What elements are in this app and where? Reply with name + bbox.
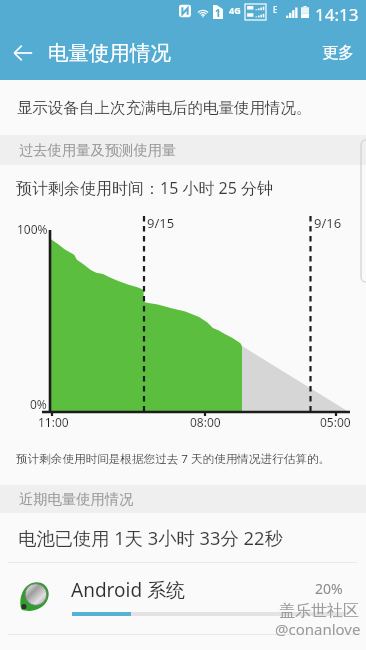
staticText: 14:13	[315, 3, 359, 26]
staticText: 11:00	[38, 414, 69, 430]
staticText: 电量使用情况	[48, 40, 171, 66]
staticText: 近期电量使用情况	[19, 490, 134, 508]
button[interactable]: 更多	[310, 29, 366, 77]
staticText: 过去使用量及预测使用量	[19, 141, 177, 159]
staticText: 1	[215, 6, 221, 20]
staticText: 预计剩余使用时间：15 小时 25 分钟	[16, 177, 274, 199]
staticText: 显示设备自上次充满电后的电量使用情况。	[17, 98, 312, 118]
staticText: 0%	[30, 396, 47, 412]
staticText: 预计剩余使用时间是根据您过去 7 天的使用情况进行估算的。	[16, 451, 331, 467]
staticText: 4G	[229, 4, 241, 16]
staticText: 盖乐世社区	[279, 601, 359, 621]
staticText: 05:00	[320, 414, 351, 430]
staticText: 9/16	[314, 214, 342, 232]
staticText: 9/15	[147, 214, 175, 232]
button[interactable]: Back	[8, 38, 37, 67]
staticText: 08:00	[190, 414, 221, 430]
staticText: 更多	[322, 43, 354, 63]
staticText: 100%	[17, 221, 48, 237]
button[interactable]: Android 系统	[0, 563, 366, 634]
staticText: @conanlove	[275, 619, 361, 639]
staticText: 电池已使用 1天 3小时 33分 22秒	[18, 525, 283, 550]
staticText: 20%	[315, 579, 343, 598]
staticText: E	[273, 4, 278, 15]
staticText: Android 系统	[71, 577, 186, 603]
